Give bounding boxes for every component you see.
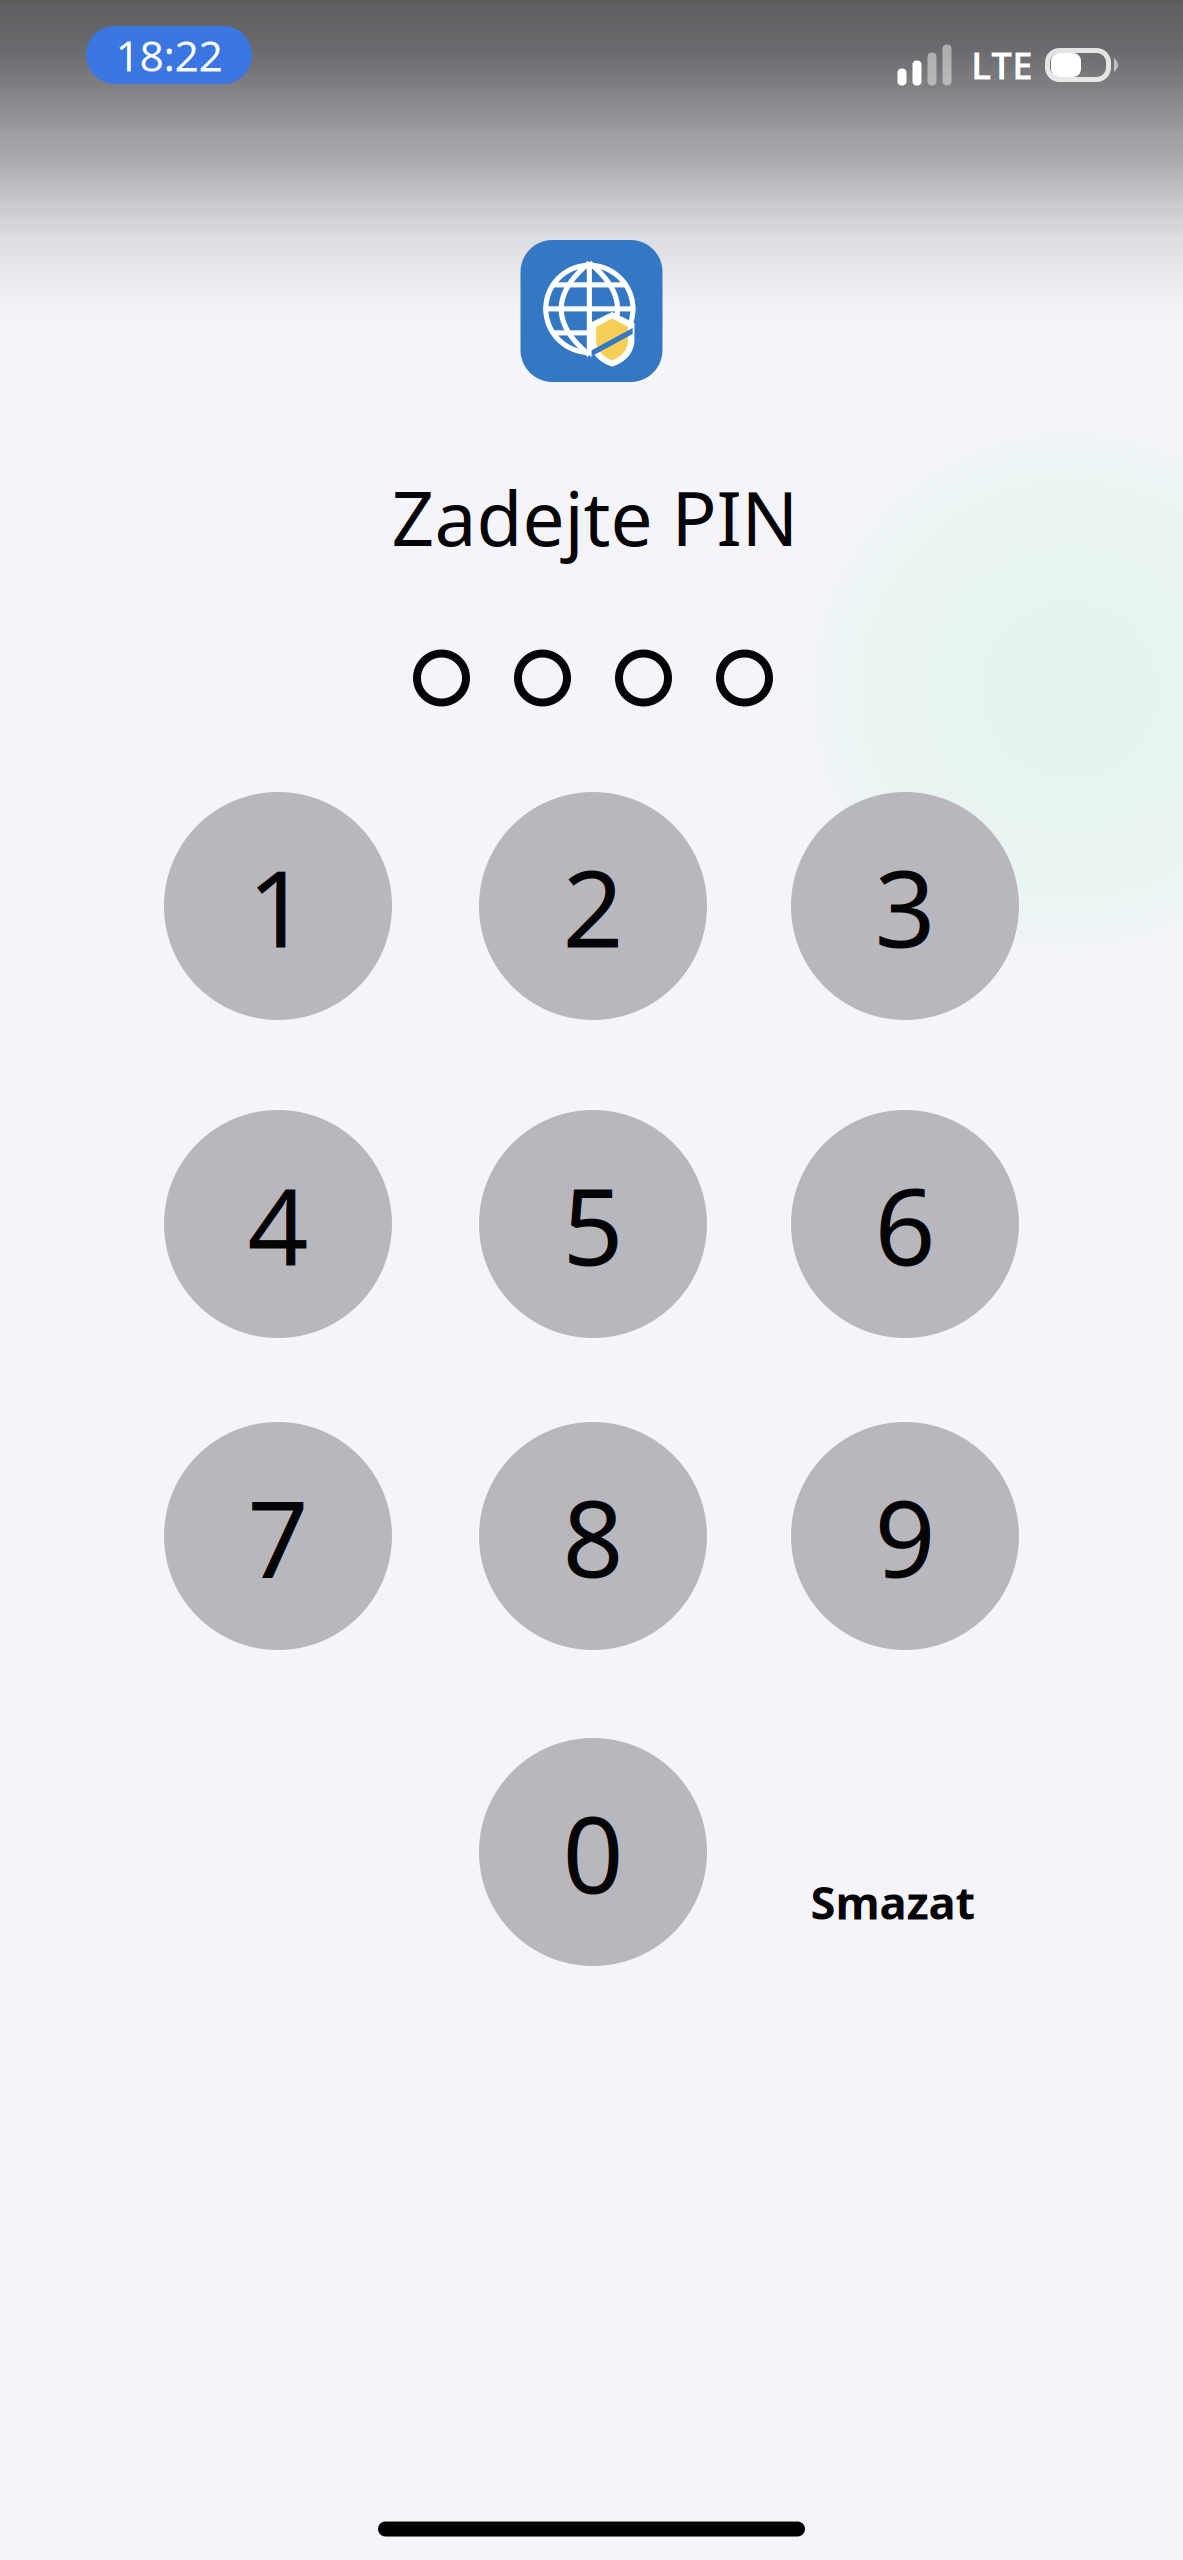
button[interactable]: 0 bbox=[479, 1738, 707, 1966]
button[interactable]: 2 bbox=[479, 792, 707, 1020]
staticText: 2 bbox=[562, 835, 623, 977]
staticText: 3 bbox=[874, 835, 935, 977]
button[interactable]: 5 bbox=[479, 1110, 707, 1338]
staticText: Smazat bbox=[810, 1872, 975, 1932]
staticText: Zadejte PIN bbox=[391, 467, 798, 567]
staticText: LTE bbox=[971, 40, 1033, 90]
staticText: 5 bbox=[562, 1153, 623, 1295]
staticText: 4 bbox=[247, 1153, 308, 1295]
staticText: 8 bbox=[562, 1465, 623, 1607]
button[interactable]: Smazat bbox=[778, 1862, 1008, 1942]
button[interactable]: 3 bbox=[791, 792, 1019, 1020]
staticText: 18:22 bbox=[115, 27, 222, 83]
button[interactable]: 4 bbox=[164, 1110, 392, 1338]
button[interactable]: 1 bbox=[164, 792, 392, 1020]
button[interactable]: 8 bbox=[479, 1422, 707, 1650]
staticText: 0 bbox=[562, 1781, 623, 1923]
staticText: 9 bbox=[874, 1465, 935, 1607]
staticText: 1 bbox=[247, 835, 308, 977]
staticText: 7 bbox=[247, 1465, 308, 1607]
button[interactable]: 6 bbox=[791, 1110, 1019, 1338]
button[interactable]: 9 bbox=[791, 1422, 1019, 1650]
staticText: 6 bbox=[874, 1153, 935, 1295]
button[interactable]: 7 bbox=[164, 1422, 392, 1650]
